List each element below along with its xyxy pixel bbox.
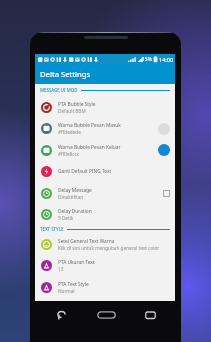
staticText: Dinaktifkan	[58, 194, 84, 200]
staticText: #ff0e8ccc	[58, 151, 80, 157]
staticText: PTA Bubble Style	[58, 101, 96, 108]
button[interactable]: Warna Bubble Pesan Keluar	[35, 139, 175, 161]
button[interactable]: Back	[50, 304, 72, 326]
staticText: 5 Detik	[58, 215, 74, 221]
staticText: Setel General Text Warna	[58, 238, 115, 245]
staticText: 15%	[142, 56, 152, 63]
staticText: 14:00	[159, 56, 174, 63]
button[interactable]: PTA Bubble Style	[35, 96, 175, 118]
staticText: Delta Settings	[40, 69, 91, 79]
staticText: Delay Message	[58, 187, 92, 194]
staticText: Ganti Default PING Text	[58, 168, 112, 175]
staticText: Default BBM	[58, 108, 86, 114]
staticText: Warna Bubble Pesan Masuk	[58, 122, 121, 129]
staticText: Klik di sini untuk mengubah general text…	[58, 245, 160, 251]
button[interactable]: Warna Bubble Pesan Masuk	[35, 118, 175, 139]
staticText: MESSAGE UI MOD	[40, 87, 78, 93]
button[interactable]: PTA Text Style	[35, 276, 175, 298]
button[interactable]: Recent apps	[139, 304, 161, 326]
button[interactable]: Home	[92, 301, 120, 329]
button[interactable]: Delay Message	[35, 182, 175, 204]
button[interactable]: Ganti Default PING Text	[35, 161, 175, 182]
button[interactable]: Delta Settings	[35, 64, 175, 84]
button[interactable]: PTA Ukuran Text	[35, 255, 175, 276]
button[interactable]: Delay Duration	[35, 204, 175, 225]
staticText: Normal	[58, 288, 75, 294]
staticText: TEXT STYLE	[40, 226, 64, 232]
button[interactable]: Setel General Text Warna	[35, 233, 175, 255]
staticText: Warna Bubble Pesan Keluar	[58, 144, 121, 151]
staticText: PTA Text Style	[58, 281, 89, 288]
staticText: #ffdedede	[58, 129, 81, 135]
staticText: PTA Ukuran Text	[58, 259, 95, 266]
staticText: Delay Duration	[58, 208, 92, 215]
staticText: 13	[58, 266, 64, 272]
